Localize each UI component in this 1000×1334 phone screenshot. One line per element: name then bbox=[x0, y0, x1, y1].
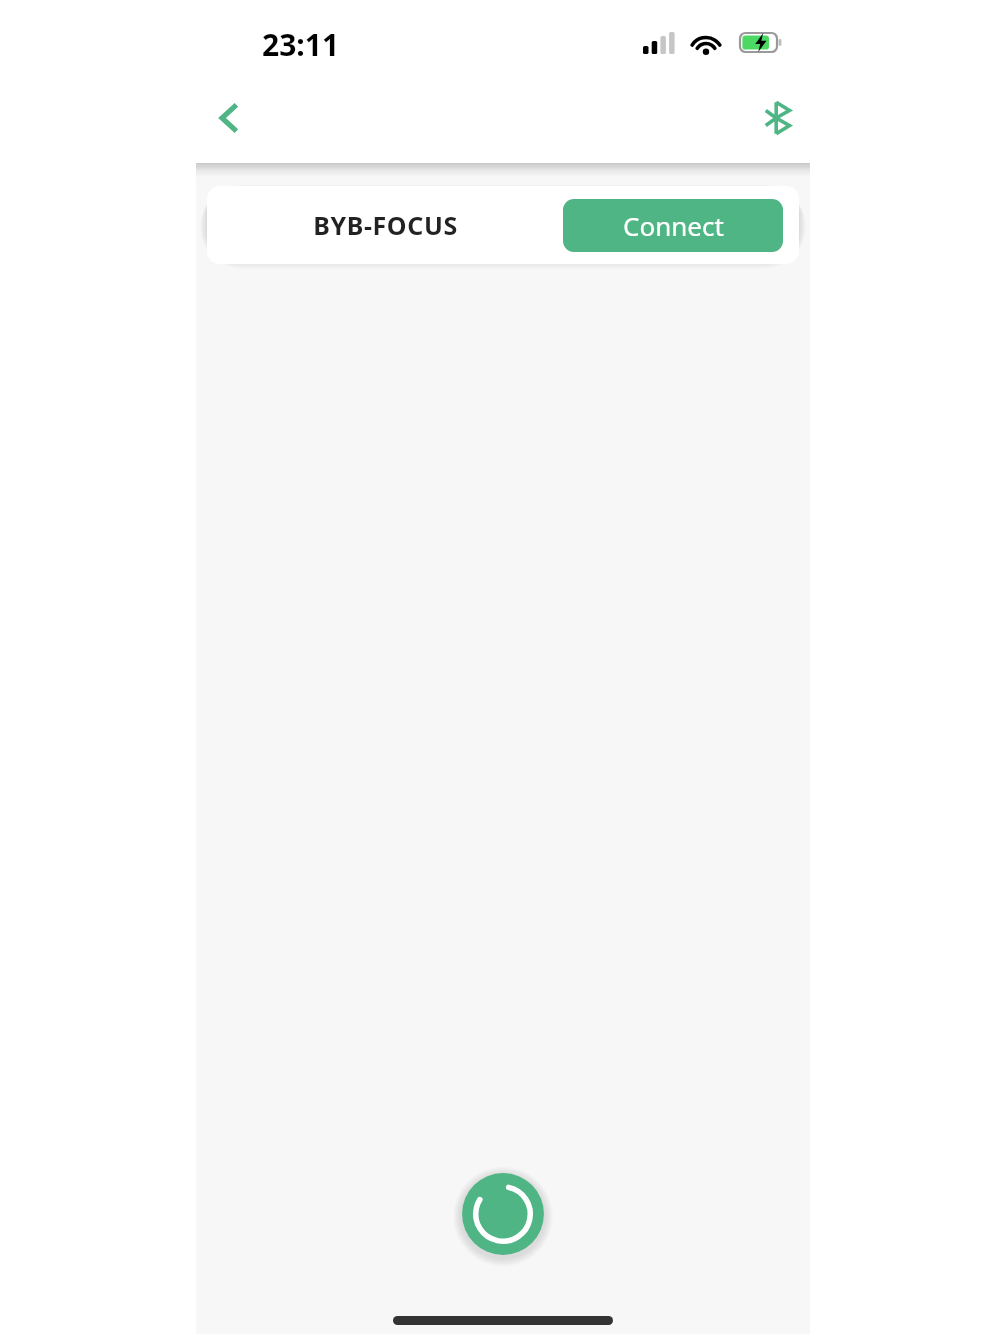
staticText: 23:11 bbox=[262, 24, 340, 64]
staticText: Connect bbox=[623, 208, 724, 243]
button[interactable]: Back bbox=[200, 88, 260, 148]
button[interactable]: BYB-FOCUS bbox=[207, 186, 799, 264]
button[interactable]: Bluetooth bbox=[748, 88, 808, 148]
button[interactable]: Scan for devices bbox=[459, 1170, 547, 1258]
button[interactable]: Connect bbox=[563, 199, 783, 252]
staticText: BYB-FOCUS bbox=[313, 208, 458, 242]
